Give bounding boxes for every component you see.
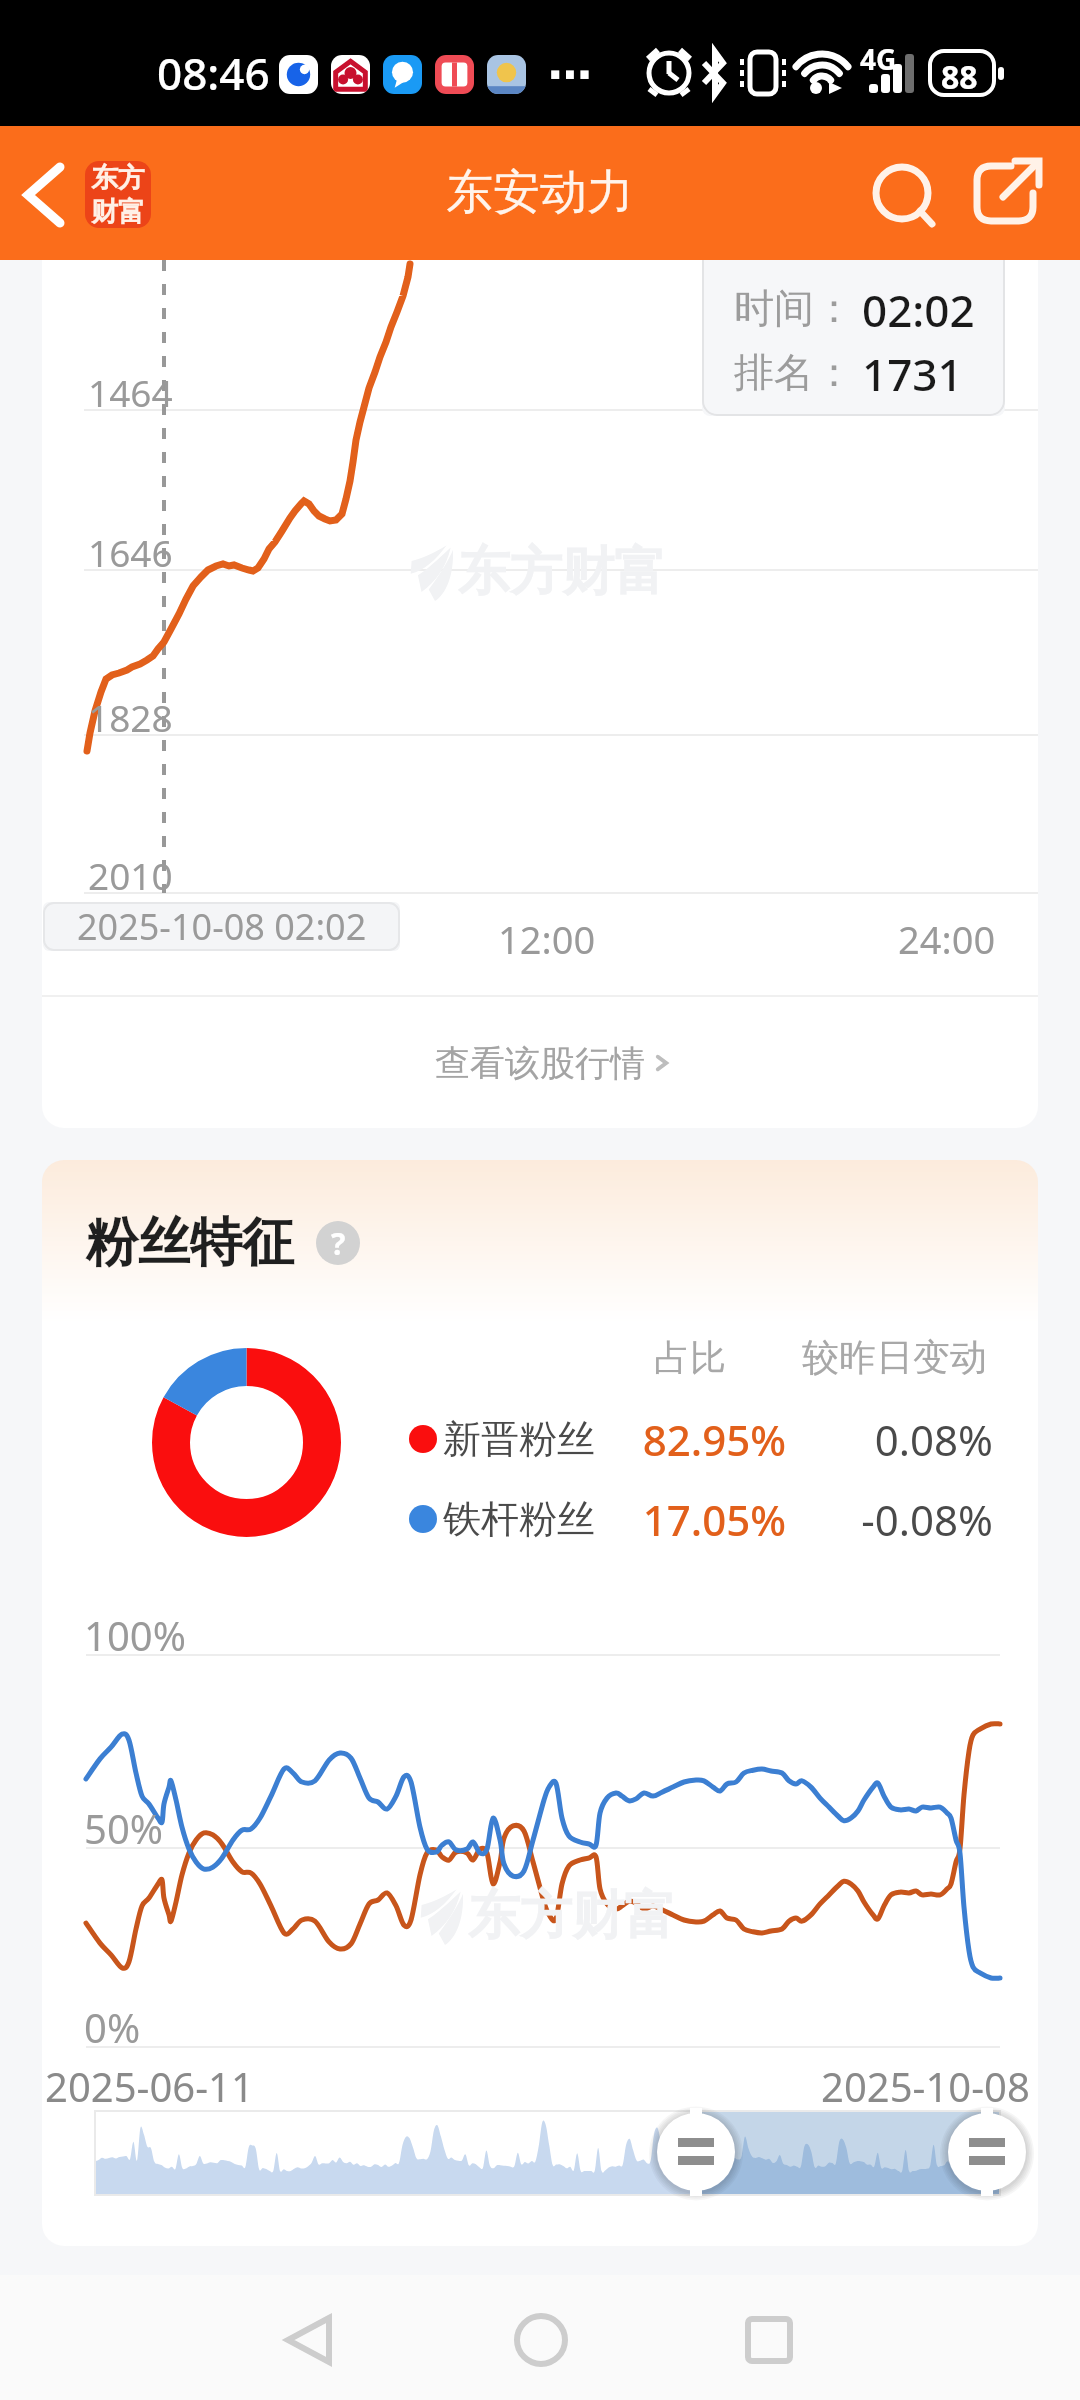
staticText: 2025-10-08 02:02 bbox=[77, 902, 367, 951]
staticText: 东安动力 bbox=[446, 163, 634, 222]
button[interactable]: 新晋粉丝 bbox=[402, 1406, 1002, 1472]
staticText: 铁杆粉丝 bbox=[443, 1495, 595, 1543]
staticText: 100% bbox=[84, 1608, 186, 1662]
staticText: 4G bbox=[860, 40, 897, 78]
staticText: 88 bbox=[941, 55, 978, 99]
staticText: 占比 bbox=[654, 1335, 726, 1380]
staticText: ? bbox=[331, 1223, 346, 1264]
staticText: 0% bbox=[84, 2000, 141, 2054]
staticText: -0.08% bbox=[813, 1491, 993, 1548]
button[interactable]: Help bbox=[316, 1221, 360, 1265]
button[interactable]: Back bbox=[239, 2275, 379, 2400]
staticText: 较昨日变动 bbox=[802, 1334, 987, 1381]
staticText: 1731 bbox=[862, 344, 963, 404]
staticText: 排名： bbox=[734, 347, 854, 397]
staticText: 时间： bbox=[734, 283, 854, 333]
staticText: 0.08% bbox=[813, 1411, 993, 1468]
staticText: 82.95% bbox=[601, 1411, 786, 1468]
button[interactable]: 铁杆粉丝 bbox=[402, 1486, 1002, 1552]
staticText: 02:02 bbox=[862, 280, 975, 340]
staticText: 17.05% bbox=[601, 1491, 786, 1548]
staticText: 2025-10-08 bbox=[821, 2059, 1030, 2113]
button[interactable]: Home bbox=[471, 2275, 611, 2400]
staticText: 12:00 bbox=[498, 913, 596, 965]
staticText: 粉丝特征 bbox=[86, 1210, 294, 1276]
staticText: 2025-06-11 bbox=[45, 2059, 254, 2113]
staticText: 财富 bbox=[91, 195, 145, 228]
button[interactable]: Range handle bbox=[943, 2110, 1031, 2194]
button[interactable]: Eastmoney logo bbox=[85, 161, 151, 228]
staticText: 新晋粉丝 bbox=[443, 1415, 595, 1463]
staticText: 1464 bbox=[88, 367, 173, 417]
staticText: 2010 bbox=[88, 850, 173, 900]
staticText: 1828 bbox=[88, 692, 173, 742]
staticText: 50% bbox=[84, 1801, 163, 1855]
staticText: 查看该股行情 bbox=[435, 1041, 645, 1085]
staticText: 1646 bbox=[88, 527, 173, 577]
button[interactable]: 查看该股行情 bbox=[42, 997, 1038, 1128]
staticText: 08:46 bbox=[157, 43, 270, 103]
button[interactable]: Stock rank trend chart bbox=[42, 260, 1038, 1128]
button[interactable]: Search bbox=[858, 149, 946, 237]
staticText: ⋯ bbox=[548, 49, 592, 100]
staticText: 24:00 bbox=[898, 913, 996, 965]
button[interactable]: Range handle bbox=[652, 2110, 740, 2194]
staticText: 东方 bbox=[91, 161, 145, 195]
button[interactable]: Share bbox=[965, 151, 1045, 231]
staticText: 东方财富 bbox=[458, 539, 666, 605]
button[interactable]: Recent apps bbox=[699, 2275, 839, 2400]
staticText: 东方财富 bbox=[468, 1883, 676, 1949]
button[interactable]: Back bbox=[4, 153, 84, 233]
